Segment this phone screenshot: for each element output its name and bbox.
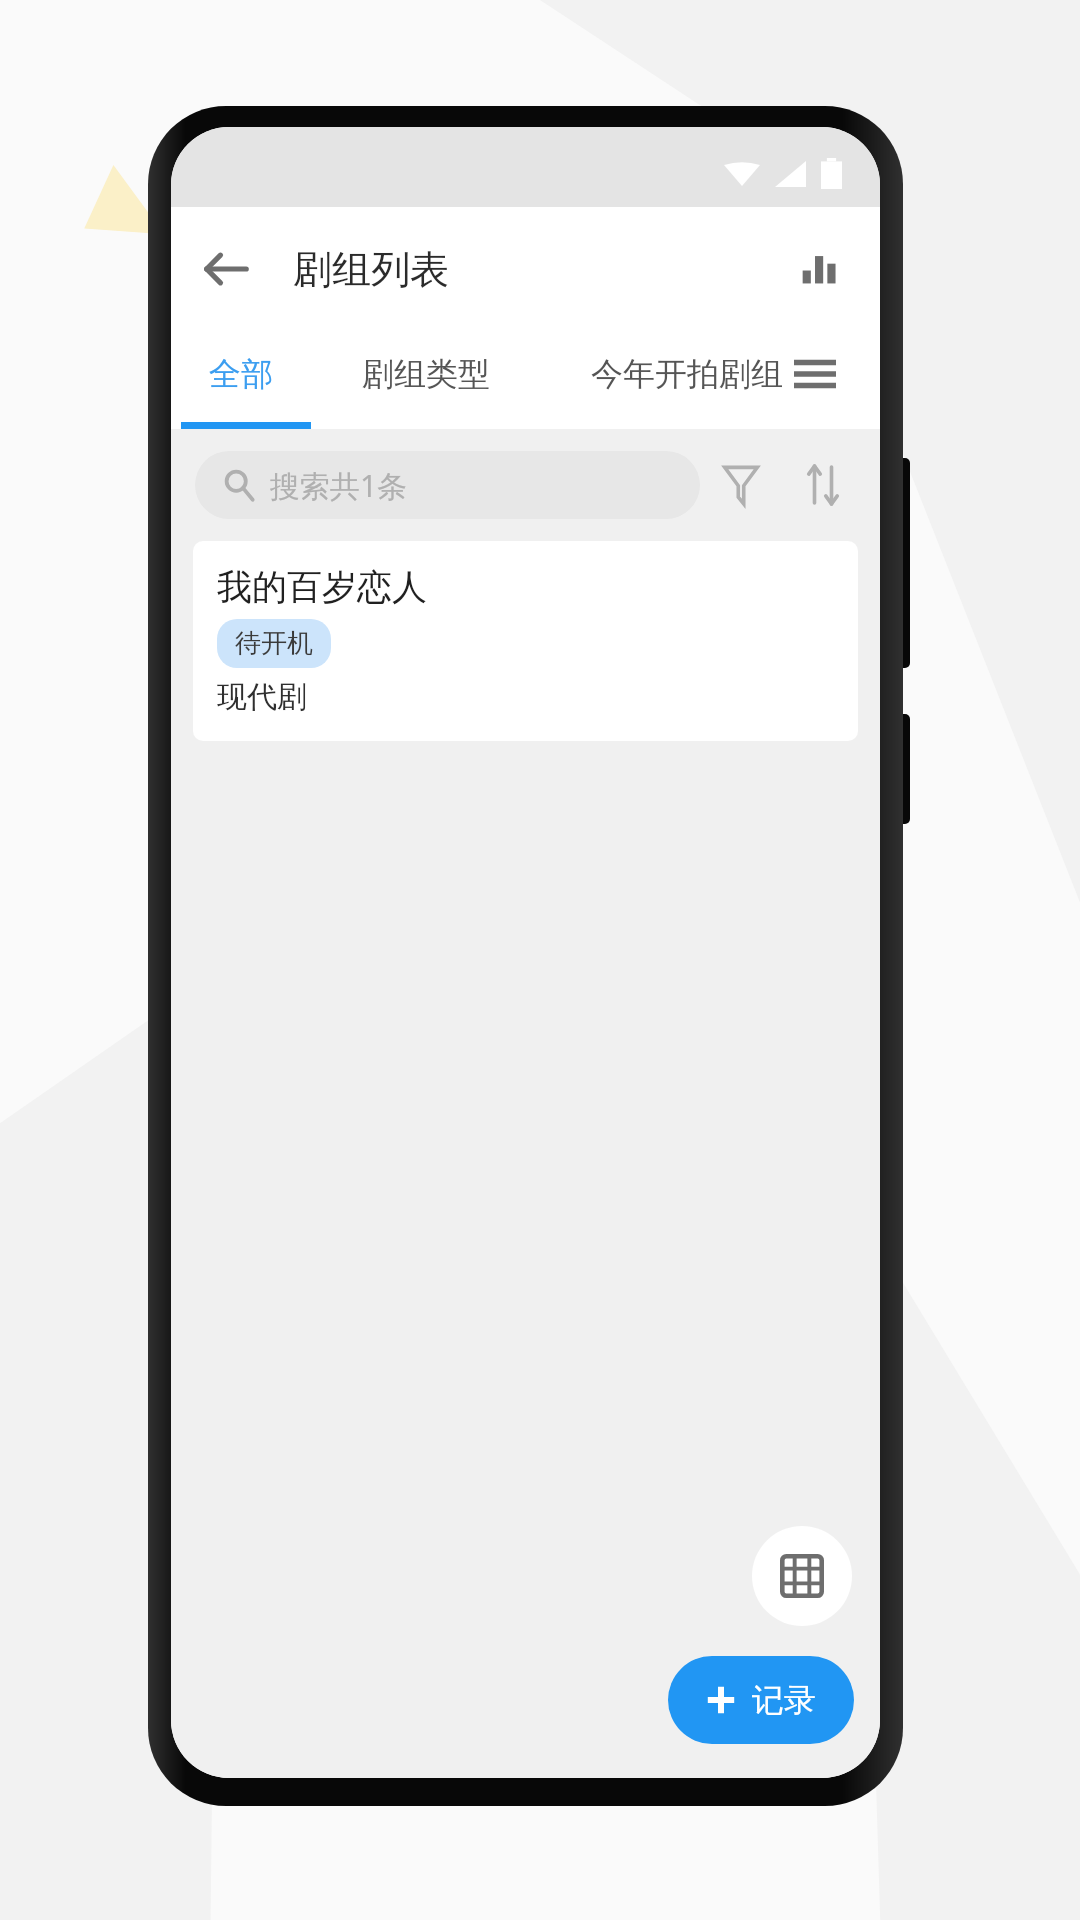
staticText: 今年开拍剧组 <box>591 354 783 394</box>
button[interactable]: Table view <box>752 1526 852 1626</box>
button[interactable]: Sort <box>782 444 864 526</box>
staticText: 剧组类型 <box>362 354 490 394</box>
staticText: 我的百岁恋人 <box>217 565 427 609</box>
staticText: 搜索共1条 <box>270 465 408 506</box>
staticText: 待开机 <box>235 627 313 660</box>
button[interactable]: 搜索共1条 <box>195 451 700 519</box>
staticText: 记录 <box>752 1680 816 1720</box>
button[interactable]: Menu <box>768 331 862 429</box>
staticText: 剧组列表 <box>293 245 449 294</box>
button[interactable]: 全部 <box>175 331 307 429</box>
button[interactable]: Back <box>187 230 265 308</box>
button[interactable]: 记录 <box>668 1656 854 1744</box>
button[interactable]: 今年开拍剧组 <box>543 331 831 429</box>
button[interactable]: Filter <box>700 444 782 526</box>
button[interactable]: 我的百岁恋人 <box>193 541 858 741</box>
staticText: 现代剧 <box>217 678 307 716</box>
staticText: 全部 <box>209 354 273 394</box>
button[interactable]: 剧组类型 <box>323 331 529 429</box>
button[interactable]: Statistics <box>780 230 858 308</box>
